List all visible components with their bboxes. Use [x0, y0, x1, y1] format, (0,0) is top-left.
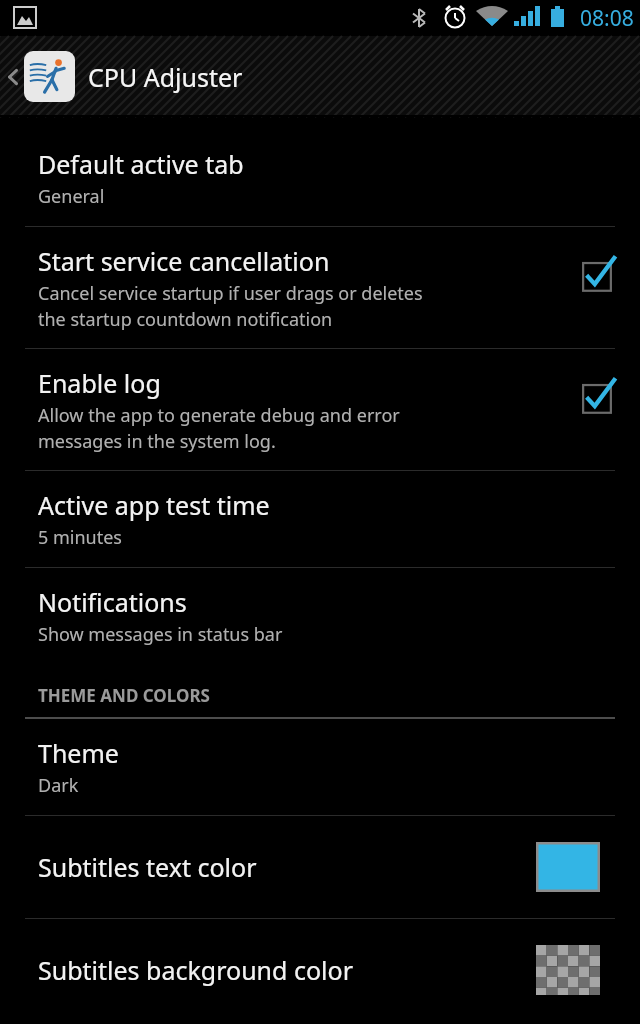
- staticText: Start service cancellation: [38, 244, 330, 278]
- staticText: Show messages in status bar: [38, 622, 283, 647]
- button[interactable]: Notifications: [0, 568, 640, 664]
- staticText: Allow the app to generate debug and erro…: [38, 403, 400, 453]
- button[interactable]: Active app test time: [0, 471, 640, 567]
- button[interactable]: Subtitles background color: [0, 919, 640, 1021]
- staticText: 5 minutes: [38, 525, 122, 550]
- staticText: Default active tab: [38, 147, 244, 181]
- staticText: 08:08: [580, 4, 634, 33]
- other: Checkbox, checked: [578, 256, 616, 294]
- staticText: Dark: [38, 773, 79, 798]
- other: Navigate up: [6, 62, 20, 92]
- staticText: THEME AND COLORS: [38, 684, 210, 707]
- staticText: CPU Adjuster: [88, 60, 243, 94]
- button[interactable]: Subtitles text color: [0, 816, 640, 918]
- other: Checkbox, checked: [578, 378, 616, 416]
- button[interactable]: Theme: [0, 719, 640, 815]
- staticText: Subtitles background color: [38, 953, 536, 987]
- button[interactable]: Default active tab: [0, 130, 640, 226]
- staticText: Enable log: [38, 366, 161, 400]
- staticText: Subtitles text color: [38, 850, 536, 884]
- button[interactable]: Enable log: [0, 349, 640, 470]
- staticText: Active app test time: [38, 488, 270, 522]
- staticText: General: [38, 184, 105, 209]
- staticText: Notifications: [38, 585, 187, 619]
- button[interactable]: Navigate up: [0, 36, 640, 117]
- staticText: Cancel service startup if user drags or …: [38, 281, 423, 331]
- button[interactable]: Start service cancellation: [0, 227, 640, 348]
- staticText: Theme: [38, 736, 119, 770]
